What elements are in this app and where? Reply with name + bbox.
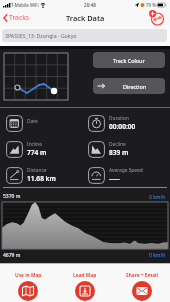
- button[interactable]: [148, 9, 165, 26]
- staticText: 00:00:00: [109, 122, 136, 131]
- staticText: Decline: [109, 141, 126, 148]
- staticText: Average Speed: [109, 167, 143, 174]
- button[interactable]: Track Colour: [93, 52, 165, 68]
- staticText: -----: [109, 174, 120, 183]
- staticText: 4679 m: [3, 252, 21, 259]
- staticText: 0 km/h: [149, 252, 166, 259]
- staticText: 3PASSES_13: Dzongla - Gokyo: [5, 32, 77, 39]
- staticText: 20:48: [84, 2, 96, 8]
- staticText: Load Map: [73, 272, 97, 279]
- staticText: Share + Email: [126, 272, 158, 279]
- staticText: 0 km/h: [149, 194, 166, 201]
- button[interactable]: Tracks: [3, 13, 30, 22]
- button[interactable]: 3PASSES_13: Dzongla - Gokyo: [2, 29, 167, 42]
- staticText: 839 m: [109, 148, 129, 157]
- button[interactable]: Use in Map: [0, 264, 56, 301]
- staticText: Track Colour: [113, 57, 145, 64]
- staticText: Distance: [27, 167, 47, 174]
- staticText: T-Mobile WiFi: [11, 2, 39, 8]
- staticText: Incline: [27, 141, 43, 148]
- staticText: 11.68 km: [27, 174, 56, 183]
- staticText: Direction: [123, 83, 147, 90]
- staticText: Use in Map: [15, 272, 42, 279]
- staticText: 79 %: [146, 2, 156, 8]
- staticText: Tracks: [9, 13, 30, 22]
- staticText: Date: [27, 118, 38, 125]
- button[interactable]: Load Map: [56, 264, 113, 301]
- button[interactable]: Direction: [93, 78, 165, 94]
- staticText: 5370 m: [3, 193, 21, 200]
- button[interactable]: Share + Email: [113, 264, 170, 301]
- staticText: Track Data: [66, 13, 105, 23]
- staticText: 774 m: [27, 148, 47, 157]
- staticText: Duration: [109, 115, 129, 122]
